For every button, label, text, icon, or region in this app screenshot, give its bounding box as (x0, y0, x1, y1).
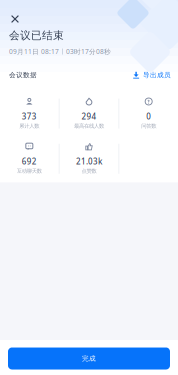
staticText: 完成 (82, 354, 96, 363)
staticText: 0 (146, 111, 151, 122)
staticText: 累计人数 (19, 123, 39, 129)
staticText: 导出成员 (143, 71, 171, 79)
staticText: 问答数 (141, 123, 156, 129)
staticText: 会议已结束 (9, 29, 64, 42)
staticText: 21.03k (76, 156, 102, 167)
staticText: 会议数据 (9, 71, 37, 79)
staticText: 294 (81, 111, 96, 122)
staticText: 692 (22, 156, 37, 167)
staticText: 373 (22, 111, 37, 122)
button[interactable]: 完成 (8, 347, 170, 369)
button[interactable]: 导出成员 (133, 71, 171, 79)
staticText: 最高在线人数 (74, 123, 104, 129)
staticText: 点赞数 (81, 168, 96, 174)
staticText: 09月11日 08:17 (9, 47, 59, 56)
staticText: 互动聊天数 (17, 168, 42, 174)
button[interactable]: Close (9, 13, 21, 25)
staticText: 03时17分08秒 (66, 47, 111, 56)
